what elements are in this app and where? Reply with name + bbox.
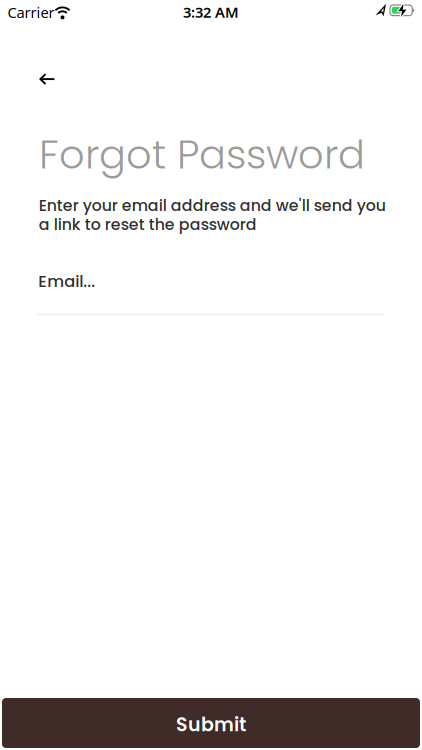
button[interactable]: Back (30, 64, 64, 94)
staticText: Enter your email address and we'll send … (39, 195, 386, 217)
button[interactable]: Submit (2, 698, 420, 748)
staticText: Forgot Password (39, 127, 365, 182)
staticText: Carrier (7, 3, 54, 22)
staticText: Email... (38, 270, 95, 293)
button[interactable]: Email (37, 262, 385, 318)
staticText: Submit (176, 711, 246, 738)
staticText: 3:32 AM (183, 2, 239, 22)
staticText: a link to reset the password (39, 213, 257, 235)
